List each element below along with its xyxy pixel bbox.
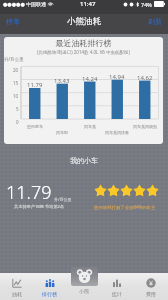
staticText: (比德酷路泽(进口) 2014款 4.0L V6 中东低配版) [4,49,163,55]
staticText: 11:47 [80,0,96,8]
staticText: 同车系 [84,124,96,129]
staticText: 14.62 [137,74,153,82]
staticText: 刷新 [148,17,162,26]
staticText: 11.79 [6,180,52,205]
staticText: 费用 [146,291,156,297]
staticText: 小熊 [79,288,89,294]
staticText: 同车系同级别 [133,124,157,129]
staticText: 15 [13,80,19,86]
button[interactable]: 排行榜 [33,273,66,300]
staticText: 13.43 [54,77,70,85]
staticText: 小熊油耗 [67,16,101,27]
button[interactable]: 小熊 [66,273,100,300]
staticText: 14.94 [109,73,125,81]
staticText: 5 [16,106,19,112]
staticText: 同车型 [56,130,68,135]
button[interactable]: 榜单 [4,14,22,29]
staticText: 14.24 [82,75,98,83]
staticText: 同车系同排量 [105,130,129,135]
button[interactable]: 统计 [100,273,134,300]
staticText: 您的油耗打败了全国94%的车主 [94,204,156,210]
staticText: 榜单 [6,17,20,26]
button[interactable]: 油耗 [0,273,33,300]
staticText: 20 [13,67,19,73]
button[interactable]: 刷新 [146,14,164,29]
staticText: 油耗 [12,291,22,297]
staticText: 排行榜 [42,291,57,297]
staticText: 统计 [112,291,122,297]
staticText: 0 [16,119,19,125]
staticText: ●●●●● 中国联通 [3,1,48,8]
staticText: 10 [13,93,19,99]
staticText: 74% [141,1,152,8]
staticText: 升/百公里 [54,197,72,202]
staticText: 共支持用户18辆 节油第2名 [14,204,65,210]
button[interactable]: 费用 [134,273,168,300]
button[interactable]: 小熊 [71,267,98,286]
staticText: 最近油耗排行榜 [4,38,163,48]
staticText: 升/百公里 [4,56,24,62]
staticText: 11.79 [27,81,43,89]
staticText: 您的爱车 [27,124,43,129]
staticText: 我的小车 [0,156,168,165]
